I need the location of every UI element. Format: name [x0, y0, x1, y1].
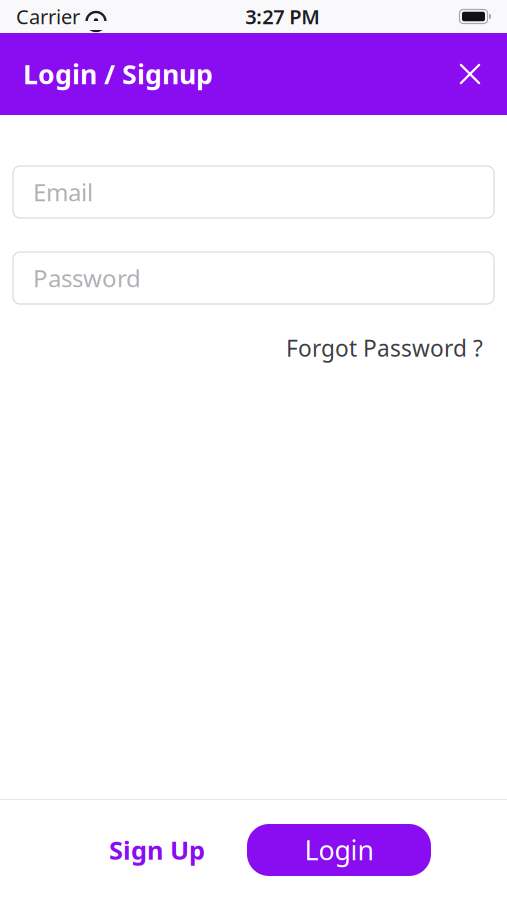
staticText: Email: [33, 176, 93, 208]
staticText: Login / Signup: [23, 56, 213, 92]
staticText: Forgot Password ?: [286, 333, 483, 363]
staticText: 3:27 PM: [245, 3, 320, 30]
staticText: Carrier: [16, 3, 80, 30]
staticText: Password: [33, 262, 141, 294]
button[interactable]: Sign Up: [67, 820, 247, 880]
button[interactable]: Forgot Password ?: [286, 327, 483, 369]
button[interactable]: Login: [247, 824, 431, 876]
staticText: Sign Up: [109, 833, 205, 867]
staticText: Login: [304, 832, 373, 868]
button[interactable]: Close: [447, 51, 493, 97]
